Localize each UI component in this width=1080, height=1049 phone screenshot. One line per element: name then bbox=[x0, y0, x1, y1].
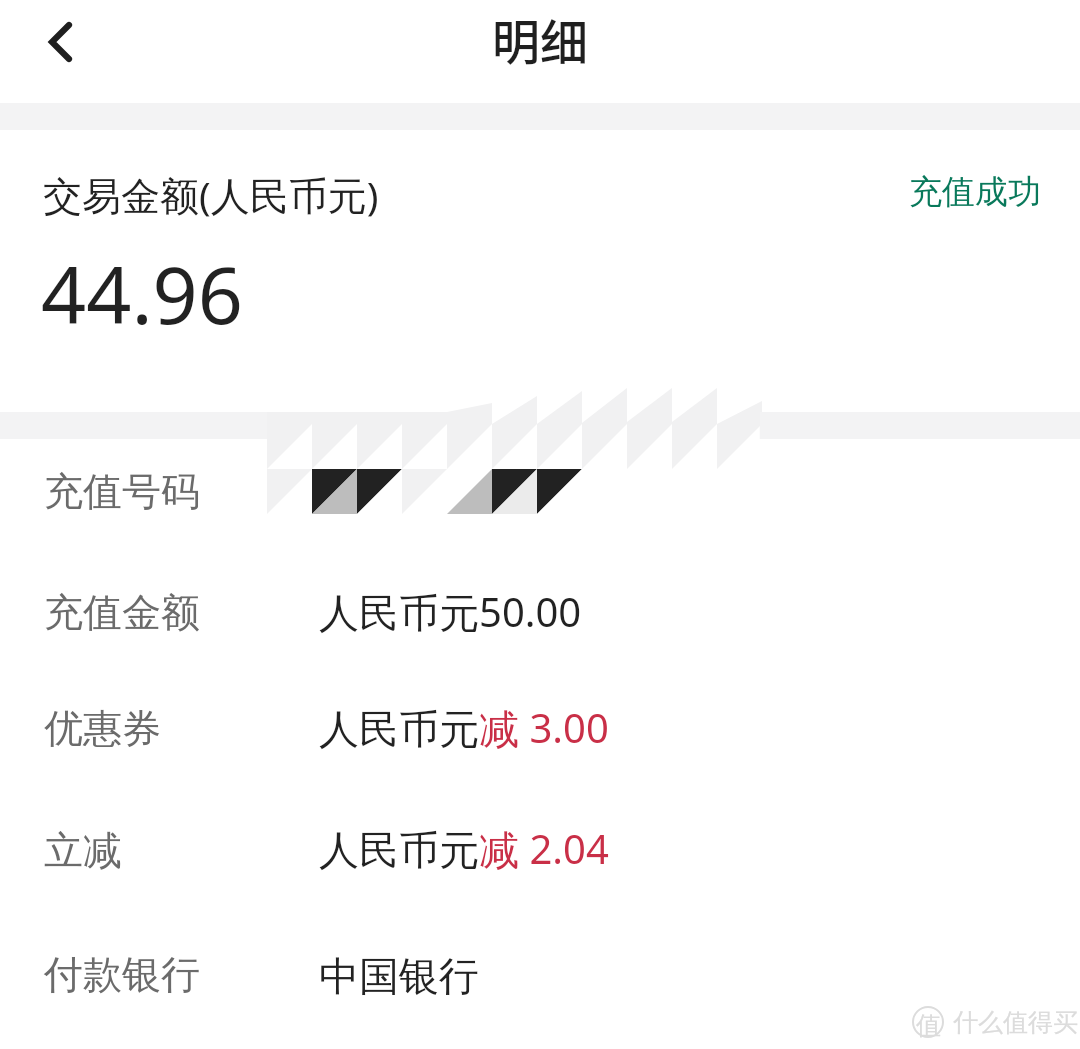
staticText: 人民币元减 2.04 bbox=[319, 821, 609, 876]
staticText: 充值号码 bbox=[44, 467, 200, 516]
staticText: 人民币元减 3.00 bbox=[319, 700, 609, 755]
button[interactable]: 付款银行 bbox=[0, 920, 1080, 1042]
button[interactable]: 充值号码 bbox=[0, 441, 1080, 562]
staticText: 44.96 bbox=[41, 240, 243, 348]
staticText: 人民币元50.00 bbox=[319, 584, 582, 639]
staticText: 中国银行 bbox=[319, 951, 479, 1001]
staticText: 充值金额 bbox=[44, 588, 200, 637]
staticText: 明细 bbox=[0, 4, 1080, 74]
staticText: 付款银行 bbox=[44, 950, 200, 999]
staticText: 什么值得买 bbox=[953, 1007, 1078, 1038]
button[interactable]: 充值金额 bbox=[0, 562, 1080, 680]
button[interactable]: Back bbox=[17, 0, 103, 86]
staticText: 值 bbox=[916, 1010, 941, 1041]
staticText: 交易金额(人民币元) bbox=[43, 168, 379, 221]
button[interactable]: 立减 bbox=[0, 798, 1080, 920]
staticText: 优惠券 bbox=[44, 704, 161, 753]
button[interactable]: 优惠券 bbox=[0, 680, 1080, 798]
staticText: 充值成功 bbox=[909, 171, 1041, 213]
staticText: 立减 bbox=[44, 826, 122, 875]
